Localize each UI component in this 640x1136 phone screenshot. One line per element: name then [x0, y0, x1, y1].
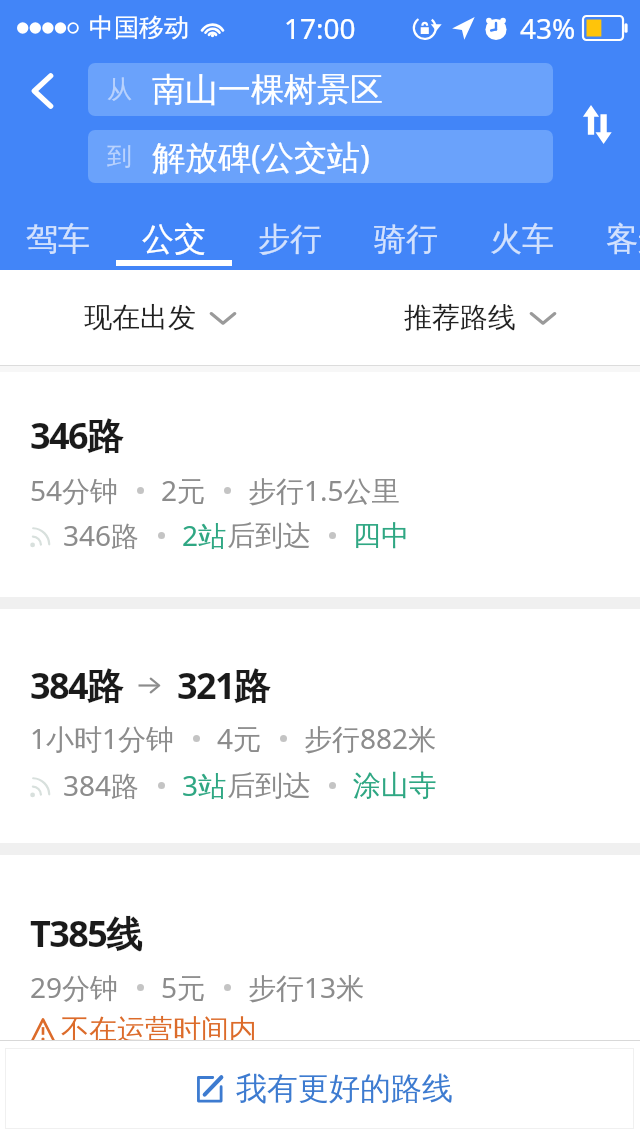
staticText: 43%	[520, 9, 576, 47]
staticText: 南山一棵树景区	[152, 69, 383, 111]
staticText: 步行882米	[304, 719, 437, 757]
staticText: 涂山寺	[353, 768, 437, 803]
staticText: 到	[107, 141, 132, 172]
staticText: 公交	[142, 219, 206, 259]
staticText: 我有更好的路线	[236, 1069, 453, 1108]
staticText: 4元	[217, 719, 262, 757]
staticText: 2元	[161, 471, 206, 509]
staticText: 不在运营时间内	[61, 1012, 257, 1047]
button[interactable]: 我有更好的路线	[5, 1048, 634, 1129]
staticText: 后到达	[227, 768, 311, 803]
staticText: 中国移动	[89, 12, 189, 43]
staticText: 火车	[490, 219, 554, 259]
staticText: 四中	[353, 518, 409, 553]
staticText: 步行1.5公里	[248, 471, 400, 509]
button[interactable]: Back	[6, 55, 78, 127]
staticText: 解放碑(公交站)	[152, 134, 370, 179]
staticText: T385线	[30, 909, 141, 958]
staticText: 2站	[182, 516, 227, 554]
button[interactable]: 从	[88, 63, 553, 116]
button[interactable]: 384路	[0, 609, 640, 843]
staticText: 384路	[63, 766, 140, 804]
button[interactable]: 火车	[464, 200, 580, 270]
button[interactable]: Swap origin and destination	[563, 88, 631, 160]
button[interactable]: 骑行	[348, 200, 464, 270]
staticText: 现在出发	[84, 300, 196, 335]
staticText: 3站	[182, 766, 227, 804]
button[interactable]: 客运	[580, 200, 640, 270]
staticText: 17:00	[284, 9, 356, 47]
staticText: 从	[107, 74, 132, 105]
button[interactable]: 步行	[232, 200, 348, 270]
staticText: 步行	[258, 219, 322, 259]
button[interactable]: 驾车	[0, 200, 116, 270]
staticText: 5元	[161, 968, 206, 1006]
staticText: 346路	[30, 411, 122, 460]
button[interactable]: 现在出发	[0, 270, 320, 365]
staticText: 骑行	[374, 219, 438, 259]
staticText: 54分钟	[30, 471, 119, 509]
staticText: 后到达	[227, 518, 311, 553]
staticText: 346路	[63, 516, 140, 554]
staticText: 步行13米	[248, 968, 365, 1006]
staticText: 29分钟	[30, 968, 119, 1006]
button[interactable]: 公交	[116, 200, 232, 270]
staticText: 驾车	[26, 219, 90, 259]
button[interactable]: T385线	[0, 855, 640, 1045]
staticText: 客运	[606, 219, 640, 259]
staticText: 1小时1分钟	[30, 719, 175, 757]
staticText: 推荐路线	[404, 300, 516, 335]
button[interactable]: 到	[88, 130, 553, 183]
button[interactable]: 推荐路线	[320, 270, 640, 365]
staticText: 321路	[177, 661, 269, 710]
staticText: 384路	[30, 661, 122, 710]
button[interactable]: 346路	[0, 372, 640, 597]
